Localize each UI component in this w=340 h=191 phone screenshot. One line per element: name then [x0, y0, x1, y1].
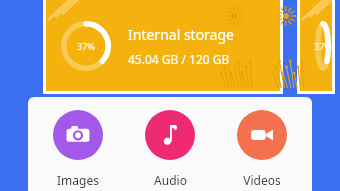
button[interactable]: Images — [36, 108, 120, 190]
button[interactable]: 37% — [292, 0, 340, 100]
staticText: Internal storage — [128, 25, 234, 44]
other: Audio — [145, 110, 195, 160]
staticText: Videos — [243, 172, 281, 188]
button[interactable]: Audio — [128, 108, 212, 190]
other: Images — [53, 110, 103, 160]
staticText: Images — [57, 172, 99, 188]
staticText: 45.04 GB / 120 GB — [128, 51, 230, 67]
staticText: Audio — [154, 172, 187, 188]
button[interactable]: Videos — [220, 108, 304, 190]
staticText: 37% — [77, 40, 95, 52]
other: Videos — [237, 110, 287, 160]
button[interactable]: 37% — [38, 0, 288, 100]
staticText: 37% — [314, 40, 332, 52]
